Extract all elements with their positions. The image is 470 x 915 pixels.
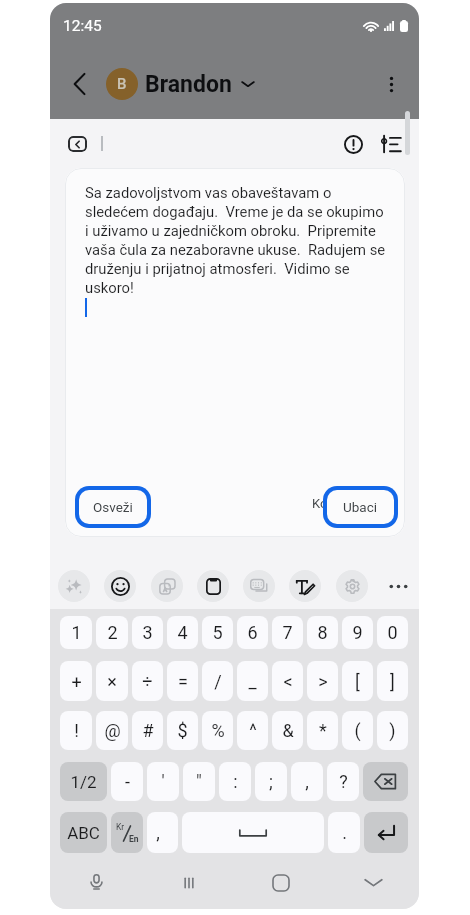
button[interactable]: ^ [237,711,268,750]
button[interactable]: Settings [336,570,368,602]
button[interactable]: Home [235,856,327,909]
staticText: ! [74,720,79,741]
staticText: 12:45 [63,17,102,35]
button[interactable]: _ [237,661,268,701]
button[interactable]: * [307,711,338,750]
button[interactable]: Recent apps [143,856,235,909]
button[interactable]: ) [377,711,408,750]
button[interactable]: ( [342,711,373,750]
button[interactable]: × [96,661,128,701]
staticText: 5 [212,622,223,643]
staticText: : [233,771,238,792]
button[interactable]: Collapse panel [68,136,87,152]
button[interactable]: Translate [151,570,183,602]
staticText: × [107,671,117,692]
button[interactable]: , [147,812,178,853]
button[interactable]: Enter [364,812,408,853]
button[interactable]: More options [376,69,406,99]
staticText: . [342,822,347,843]
button[interactable]: Back [65,69,95,99]
button[interactable]: % [202,711,233,750]
button[interactable]: Smart suggestions [58,570,90,602]
staticText: Kr [116,822,125,832]
staticText: & [282,720,294,741]
staticText: ABC [67,823,100,843]
staticText: 9 [352,622,363,643]
button[interactable]: Clipboard [197,570,229,602]
staticText: 8 [317,622,328,643]
staticText: ) [389,720,396,741]
button[interactable]: More keyboard options [382,570,414,602]
staticText: 4 [177,622,188,643]
button[interactable]: > [307,661,338,701]
staticText: ( [354,720,361,741]
staticText: / [214,671,222,692]
button[interactable]: Osveži [79,490,147,524]
button[interactable]: Backspace [363,762,408,801]
button[interactable]: Hide keyboard [327,856,419,909]
staticText: 7 [282,622,293,643]
staticText: Osveži [93,499,133,515]
button[interactable]: 9 [342,616,373,649]
staticText: , [156,822,160,843]
button[interactable]: , [291,762,323,801]
button[interactable]: 4 [167,616,198,649]
staticText: 2 [107,622,118,643]
button[interactable]: Text formatting [376,129,406,159]
button[interactable]: / [202,661,233,701]
staticText: % [211,720,225,741]
staticText: Ubaci [343,499,378,515]
button[interactable]: + [60,661,92,701]
staticText: 3 [142,622,153,643]
staticText: ? [339,771,348,792]
staticText: $ [177,720,188,741]
button[interactable]: [ [342,661,373,701]
staticText: + [71,671,82,692]
button[interactable]: Handwriting [289,570,321,602]
button[interactable]: 7 [272,616,303,649]
staticText: 6 [247,622,258,643]
button[interactable]: Chat stickers [243,570,275,602]
button[interactable]: Voice input [50,856,143,909]
staticText: _ [248,671,257,692]
staticText: 0 [387,622,398,643]
button[interactable]: 5 [202,616,233,649]
button[interactable]: @ [96,711,128,750]
button[interactable]: 8 [307,616,338,649]
button[interactable]: Emoji [104,570,136,602]
button[interactable]: & [272,711,303,750]
staticText: 1/2 [70,772,97,792]
button[interactable]: Switch language [111,812,143,853]
button[interactable]: ] [377,661,408,701]
staticText: 1 [71,622,82,643]
button[interactable]: ! [60,711,92,750]
button[interactable]: 6 [237,616,268,649]
button[interactable]: 2 [96,616,128,649]
button[interactable]: ; [255,762,287,801]
staticText: B [117,75,127,93]
button[interactable]: Information [338,129,368,159]
button[interactable]: # [132,711,163,750]
staticText: Sa zadovoljstvom vas obaveštavam o slede… [85,184,386,296]
button[interactable]: . [328,812,360,853]
staticText: [ [355,671,360,692]
button[interactable]: Space [182,812,324,853]
button[interactable]: ÷ [132,661,163,701]
button[interactable]: ABC [60,812,107,853]
staticText: # [142,720,154,741]
button[interactable]: = [167,661,198,701]
button[interactable]: - [111,762,143,801]
button[interactable]: 1/2 [60,762,107,801]
button[interactable]: " [183,762,215,801]
button[interactable]: ? [327,762,359,801]
button[interactable]: $ [167,711,198,750]
staticText: = [178,671,188,692]
button[interactable]: 0 [377,616,408,649]
button[interactable]: < [272,661,303,701]
button[interactable]: 3 [132,616,163,649]
button[interactable]: ' [147,762,179,801]
button[interactable]: 1 [60,616,92,649]
button[interactable]: Ubaci [327,490,394,524]
button[interactable]: : [219,762,251,801]
staticText: En [129,834,139,844]
